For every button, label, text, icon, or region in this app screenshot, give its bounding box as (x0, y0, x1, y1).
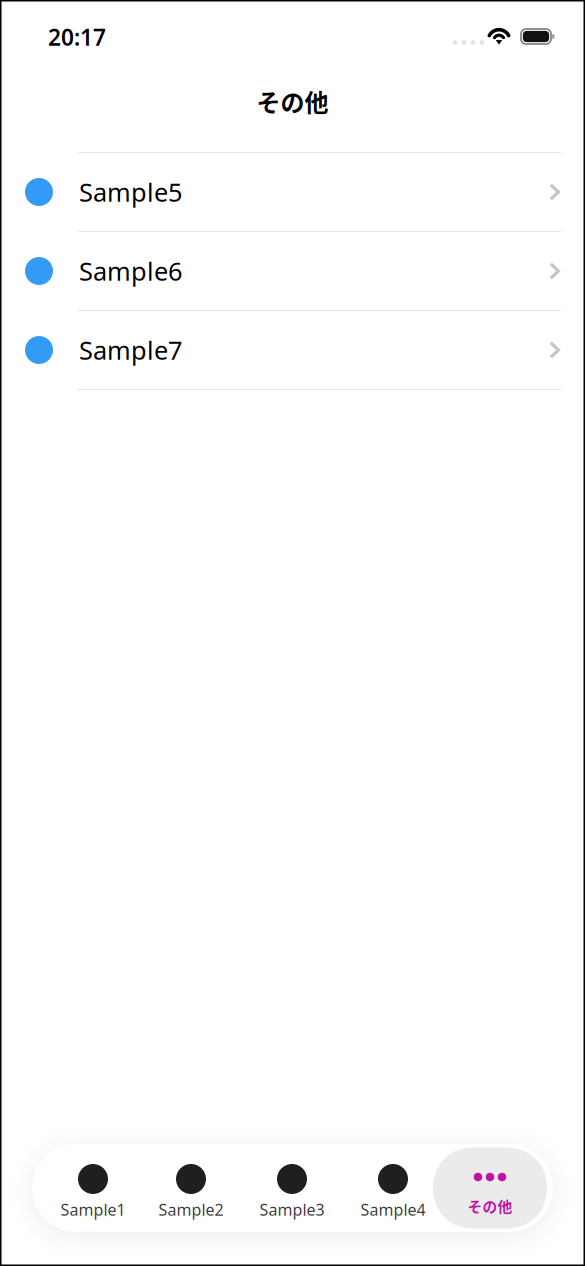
button[interactable]: Sample7 (0, 311, 585, 390)
staticText: 20:17 (48, 22, 106, 52)
button[interactable]: Sample2 (141, 1144, 241, 1232)
staticText: その他 (467, 1195, 512, 1217)
staticText: Sample7 (79, 333, 182, 367)
button[interactable]: Sample6 (0, 232, 585, 311)
button[interactable]: Sample5 (0, 153, 585, 232)
button[interactable]: Sample1 (43, 1144, 143, 1232)
button[interactable]: Sample3 (242, 1144, 342, 1232)
staticText: Sample5 (79, 175, 182, 209)
staticText: Sample2 (158, 1199, 223, 1220)
staticText: その他 (256, 84, 328, 118)
staticText: Sample1 (60, 1199, 125, 1220)
button[interactable]: その他 (433, 1147, 547, 1228)
staticText: Sample3 (259, 1199, 324, 1220)
button[interactable]: Sample4 (343, 1144, 443, 1232)
staticText: Sample4 (360, 1199, 425, 1220)
staticText: Sample6 (79, 254, 182, 288)
